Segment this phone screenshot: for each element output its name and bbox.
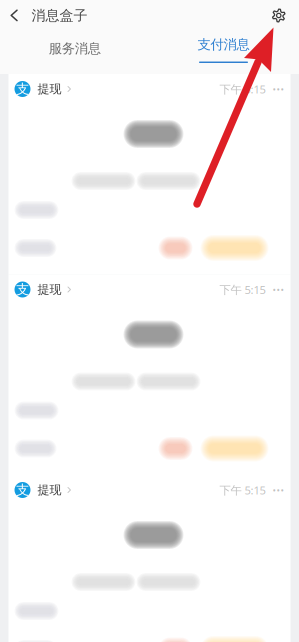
staticText: 下午 5:15	[219, 81, 265, 97]
staticText: •••	[272, 283, 284, 296]
staticText: •••	[272, 83, 284, 95]
staticText: •••	[272, 484, 284, 496]
staticText: 支付消息	[197, 36, 249, 53]
button[interactable]: Settings	[271, 0, 299, 31]
staticText: 支	[16, 81, 29, 97]
button[interactable]: 支	[8, 475, 290, 505]
button[interactable]: Back	[0, 0, 31, 31]
staticText: 下午 5:15	[219, 482, 265, 498]
staticText: 下午 5:15	[219, 282, 265, 297]
button[interactable]: 服务消息	[0, 27, 149, 70]
staticText: 消息盒子	[31, 7, 87, 24]
staticText: 服务消息	[49, 40, 101, 57]
button[interactable]: 支	[8, 274, 290, 304]
staticText: 提现	[37, 482, 61, 497]
button[interactable]: 支	[8, 74, 290, 104]
staticText: 提现	[37, 81, 61, 96]
button[interactable]: 支付消息	[149, 27, 298, 70]
staticText: 支	[16, 281, 29, 298]
staticText: 提现	[37, 282, 61, 297]
staticText: 支	[16, 482, 29, 498]
